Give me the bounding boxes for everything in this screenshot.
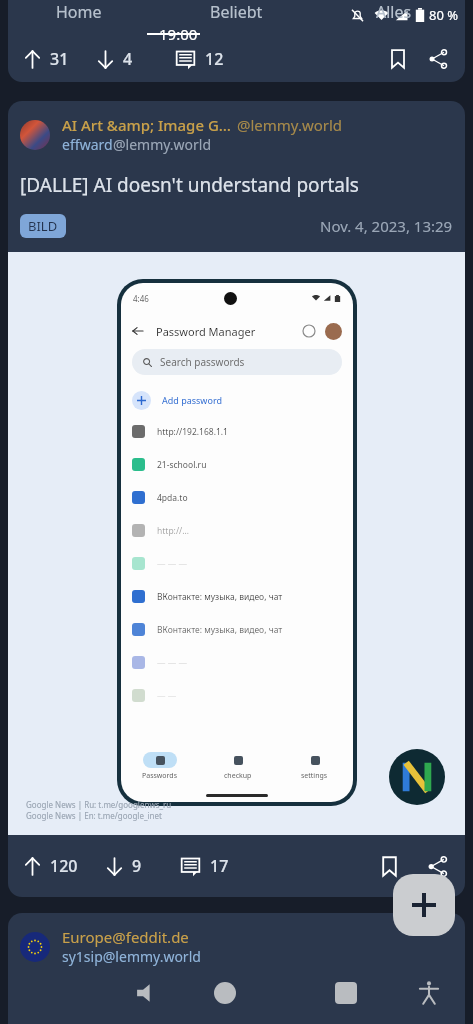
button[interactable]: 9 [102,853,144,879]
staticText: checkup [224,771,252,781]
staticText: Beliebt [210,1,263,23]
staticText: http://192.168.1.1 [157,426,228,438]
button[interactable]: 12 [173,46,226,72]
staticText: — — — [157,558,187,570]
button[interactable]: Europe@feddit.de [8,913,465,1024]
staticText: Password Manager [156,324,256,339]
staticText: @lemmy.world [113,135,212,154]
staticText: Add password [162,394,222,406]
staticText: ВКонтакте: музыка, видео, чат [157,591,283,603]
staticText: — — [157,690,177,702]
staticText: 19:00 [159,24,198,44]
staticText: 4 [123,48,133,70]
button[interactable]: Recents [335,982,357,1004]
button[interactable]: Home [0,0,157,24]
button[interactable]: 31 [20,46,71,72]
staticText: AI Art &amp; Image G… [62,115,231,135]
button[interactable]: Alles [315,0,473,24]
staticText: 31 [50,48,69,70]
button[interactable]: 4 [93,46,135,72]
staticText: Search passwords [160,355,245,369]
staticText: Nov. 4, 2023, 13:29 [320,216,453,236]
staticText: @lemmy.world [237,115,343,135]
button[interactable]: checkup [199,752,276,781]
button[interactable]: BILD [20,214,66,238]
button[interactable]: Accessibility [409,973,449,1013]
button[interactable]: Passwords [121,752,199,781]
staticText: 120 [50,855,78,877]
staticText: ВКонтакте: музыка, видео, чат [157,624,283,636]
staticText: 21-school.ru [157,459,207,471]
button[interactable]: Share [421,850,453,882]
staticText: e [62,135,70,154]
staticText: Google News | Ru: t.me/googlenws_ru [26,799,172,810]
staticText: Passwords [142,771,178,781]
staticText: 17 [210,855,229,877]
staticText: Home [56,1,102,23]
staticText: Europe@feddit.de [62,927,189,947]
staticText: 80 % [429,6,459,24]
button[interactable]: 31 [8,0,465,82]
button[interactable]: [DALLE] AI doesn't understand portals [20,172,359,198]
button[interactable]: Home [214,982,236,1004]
staticText: 12 [205,48,224,70]
staticText: — — — [157,657,187,669]
button[interactable]: Share [423,44,453,74]
button[interactable]: 120 [20,853,80,879]
staticText: 9 [132,855,142,877]
button[interactable]: Volume [127,973,167,1013]
staticText: Google News | En: t.me/google_inet [26,810,162,821]
staticText: 4:46 [133,293,149,304]
button[interactable]: Save [383,44,413,74]
staticText: http://… [157,525,189,537]
staticText: BILD [28,217,58,235]
button[interactable]: 17 [178,853,231,879]
button[interactable]: settings [276,752,353,781]
staticText: settings [301,771,328,781]
button[interactable]: Save [373,850,405,882]
button[interactable]: Beliebt [157,0,315,24]
staticText: ffward [70,135,113,154]
button[interactable]: AI Art &amp; Image G… [8,101,465,154]
button[interactable]: Create post [393,874,455,936]
staticText: Alles [376,1,412,23]
staticText: sy1sip@lemmy.world [62,947,201,966]
staticText: 4pda.to [157,492,188,504]
